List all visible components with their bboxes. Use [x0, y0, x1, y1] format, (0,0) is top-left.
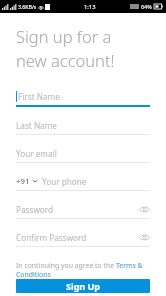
staticText: 1:13	[84, 3, 96, 11]
staticText: new account!	[16, 49, 115, 71]
staticText: Last Name	[16, 120, 57, 131]
staticText: Sign Up	[66, 280, 101, 292]
staticText: 64%	[141, 3, 152, 10]
staticText: 3.6KB/s	[18, 3, 37, 10]
button[interactable]: +91	[16, 172, 150, 200]
button[interactable]: Sign Up	[16, 279, 150, 293]
staticText: In continuing you agree to the Terms & C…	[16, 261, 150, 279]
button[interactable]: Last Name	[16, 116, 150, 144]
staticText: First Name	[18, 91, 60, 102]
button[interactable]: Your email	[16, 144, 150, 172]
button[interactable]: Password	[16, 200, 150, 228]
staticText: +91	[16, 176, 30, 187]
button[interactable]: Confirm Password	[16, 228, 150, 256]
button[interactable]: Show password	[138, 231, 150, 243]
staticText: Confirm Password	[16, 232, 87, 243]
staticText: Your phone	[42, 176, 87, 187]
staticText: Your email	[16, 148, 57, 159]
staticText: Password	[16, 204, 54, 215]
button[interactable]: Show password	[138, 203, 150, 215]
button[interactable]: First Name	[16, 87, 150, 116]
staticText: Sign up for a	[16, 25, 112, 47]
other: Select country code	[32, 179, 38, 183]
